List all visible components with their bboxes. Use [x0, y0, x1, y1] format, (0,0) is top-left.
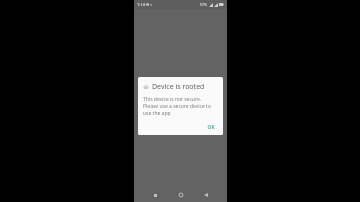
button[interactable]: Home: [176, 190, 186, 200]
staticText: This device is not secure. Please use a …: [143, 96, 213, 117]
staticText: 1:14: [137, 2, 145, 7]
staticText: 57%: [200, 2, 208, 7]
staticText: Device is rooted: [152, 82, 205, 92]
staticText: OK: [207, 124, 215, 131]
button[interactable]: OK: [204, 122, 218, 133]
button[interactable]: Back: [201, 190, 211, 200]
button[interactable]: Recent apps: [150, 190, 160, 200]
